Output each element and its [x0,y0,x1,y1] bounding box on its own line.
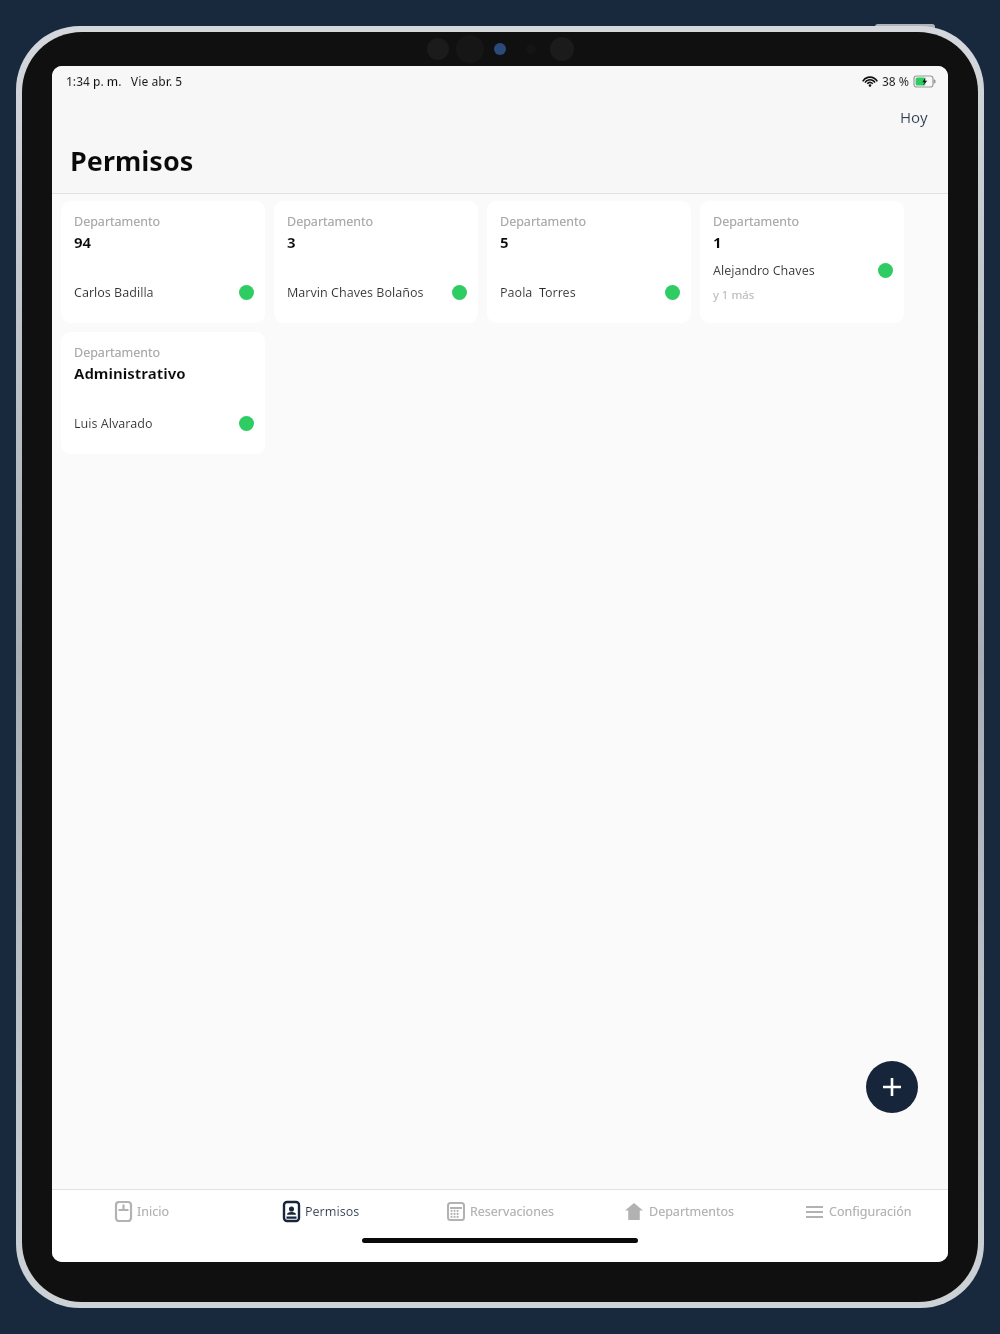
staticText: Inicio [137,1203,169,1220]
staticText: Departamento [74,213,161,230]
staticText: Departamento [287,213,374,230]
staticText: 94 [74,232,92,252]
staticText: Departamento [74,344,161,361]
staticText: Alejandro Chaves [713,262,878,279]
staticText: Hoy [900,107,928,127]
staticText: 1:34 p. m. Vie abr. 5 [66,73,183,89]
staticText: Departamento [500,213,587,230]
staticText: Departamento [713,213,800,230]
staticText: 5 [500,232,509,252]
button[interactable]: Configuración [769,1190,948,1232]
staticText: Luis Alvarado [74,415,239,432]
staticText: 38 % [882,73,910,89]
staticText: Departmentos [649,1203,735,1220]
staticText: Administrativo [74,363,186,383]
staticText: 3 [287,232,296,252]
button[interactable]: Agregar permiso [866,1061,918,1113]
button[interactable]: Departamento [61,201,265,323]
staticText: Carlos Badilla [74,284,239,301]
button[interactable]: Departamento [61,332,265,454]
button[interactable]: Departamento [487,201,691,323]
staticText: Marvin Chaves Bolaños [287,284,452,301]
staticText: y 1 más [713,287,755,303]
button[interactable]: Departmentos [590,1190,769,1232]
staticText: Permisos [305,1203,360,1220]
button[interactable]: Inicio [52,1190,232,1232]
button[interactable]: Departamento [700,201,904,323]
staticText: Permisos [70,142,194,179]
button[interactable]: Permisos [232,1190,411,1232]
button[interactable]: Hoy [892,103,936,131]
staticText: Reservaciones [470,1203,554,1220]
button[interactable]: Reservaciones [411,1190,590,1232]
button[interactable]: Departamento [274,201,478,323]
staticText: Configuración [829,1203,912,1220]
staticText: 1 [713,232,722,252]
staticText: Paola Torres [500,284,665,301]
